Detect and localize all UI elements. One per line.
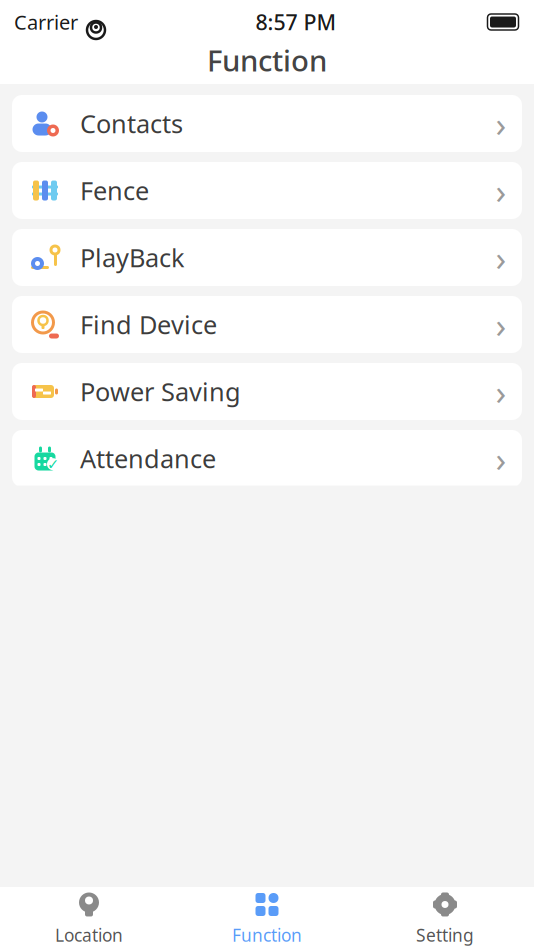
staticText: › — [495, 368, 506, 414]
button[interactable]: ✓ — [12, 430, 522, 487]
staticText: Location — [55, 923, 123, 946]
staticText: › — [495, 301, 506, 347]
staticText: Carrier — [14, 9, 78, 35]
staticText: › — [495, 234, 506, 280]
staticText: 8:57 PM — [255, 8, 336, 36]
staticText: Function — [232, 923, 302, 946]
button[interactable]: Power Saving — [12, 363, 522, 420]
button[interactable]: Find Device — [12, 296, 522, 353]
staticText: Setting — [416, 923, 474, 946]
button[interactable]: PlayBack — [12, 229, 522, 286]
button[interactable]: Fence — [12, 162, 522, 219]
staticText: Find Device — [80, 308, 217, 341]
staticText: › — [495, 435, 506, 481]
staticText: Contacts — [80, 107, 183, 140]
button[interactable]: Contacts — [12, 95, 522, 152]
staticText: Function — [207, 40, 327, 79]
staticText: ✓ — [47, 456, 59, 472]
staticText: PlayBack — [80, 241, 185, 274]
staticText: › — [495, 167, 506, 213]
staticText: › — [495, 100, 506, 146]
button[interactable]: Function — [178, 887, 356, 950]
button[interactable]: Setting — [356, 887, 534, 950]
staticText: Fence — [80, 174, 149, 207]
staticText: Power Saving — [80, 375, 241, 408]
button[interactable]: Location — [0, 887, 178, 950]
staticText: Attendance — [80, 442, 216, 475]
